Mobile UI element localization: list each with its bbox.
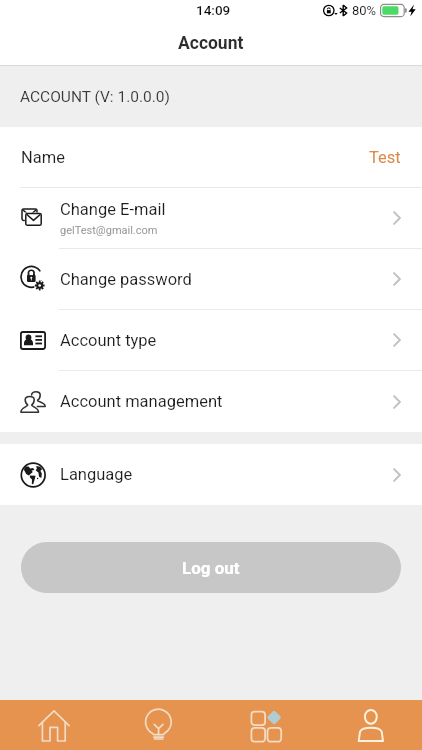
- staticText: Language: [60, 465, 133, 484]
- button[interactable]: Change E-mail: [0, 188, 422, 248]
- button[interactable]: Profile: [316, 700, 422, 750]
- button[interactable]: Name: [0, 127, 422, 187]
- button[interactable]: Language: [0, 444, 422, 505]
- button[interactable]: Account management: [0, 371, 422, 432]
- button[interactable]: Change password: [0, 249, 422, 309]
- staticText: Account: [178, 33, 244, 54]
- staticText: ACCOUNT (V: 1.0.0.0): [20, 88, 170, 106]
- staticText: 80%: [352, 3, 377, 18]
- staticText: 14:09: [196, 2, 231, 18]
- staticText: gelTest@gmail.com: [60, 224, 158, 237]
- button[interactable]: Account type: [0, 310, 422, 370]
- staticText: Test: [369, 148, 401, 167]
- staticText: Account type: [60, 331, 157, 350]
- staticText: Name: [21, 148, 65, 167]
- staticText: Log out: [182, 558, 240, 578]
- button[interactable]: Home: [0, 700, 105, 750]
- button[interactable]: Tips: [105, 700, 210, 750]
- staticText: Account management: [60, 392, 223, 411]
- staticText: Change E-mail: [60, 200, 166, 219]
- button[interactable]: Log out: [21, 542, 401, 593]
- button[interactable]: Apps: [210, 700, 316, 750]
- staticText: Change password: [60, 270, 192, 289]
